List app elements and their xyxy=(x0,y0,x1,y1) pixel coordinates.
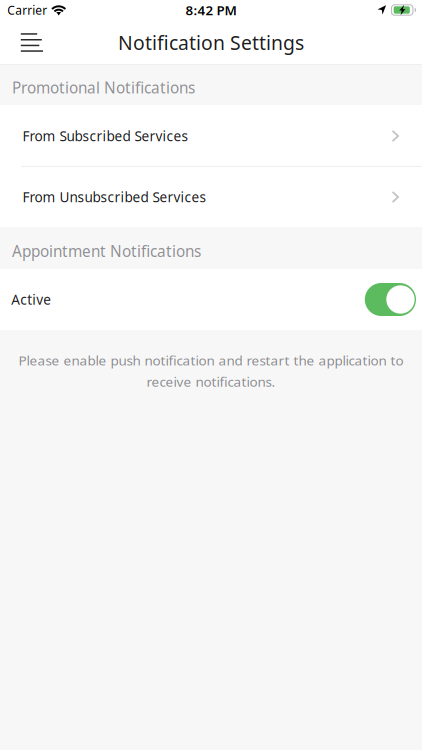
staticText: Carrier xyxy=(7,2,47,18)
staticText: Promotional Notifications xyxy=(12,77,195,98)
staticText: Notification Settings xyxy=(118,29,304,56)
staticText: receive notifications. xyxy=(146,372,275,391)
button[interactable]: From Subscribed Services xyxy=(0,105,422,167)
staticText: From Subscribed Services xyxy=(22,127,188,145)
staticText: Active xyxy=(11,290,51,309)
staticText: Please enable push notification and rest… xyxy=(18,351,403,369)
button[interactable]: From Unsubscribed Services xyxy=(0,167,422,227)
staticText: From Unsubscribed Services xyxy=(22,188,206,206)
button[interactable]: Menu xyxy=(0,20,57,65)
staticText: 8:42 PM xyxy=(185,1,236,19)
staticText: Appointment Notifications xyxy=(12,240,201,261)
button[interactable]: Active xyxy=(365,283,416,316)
